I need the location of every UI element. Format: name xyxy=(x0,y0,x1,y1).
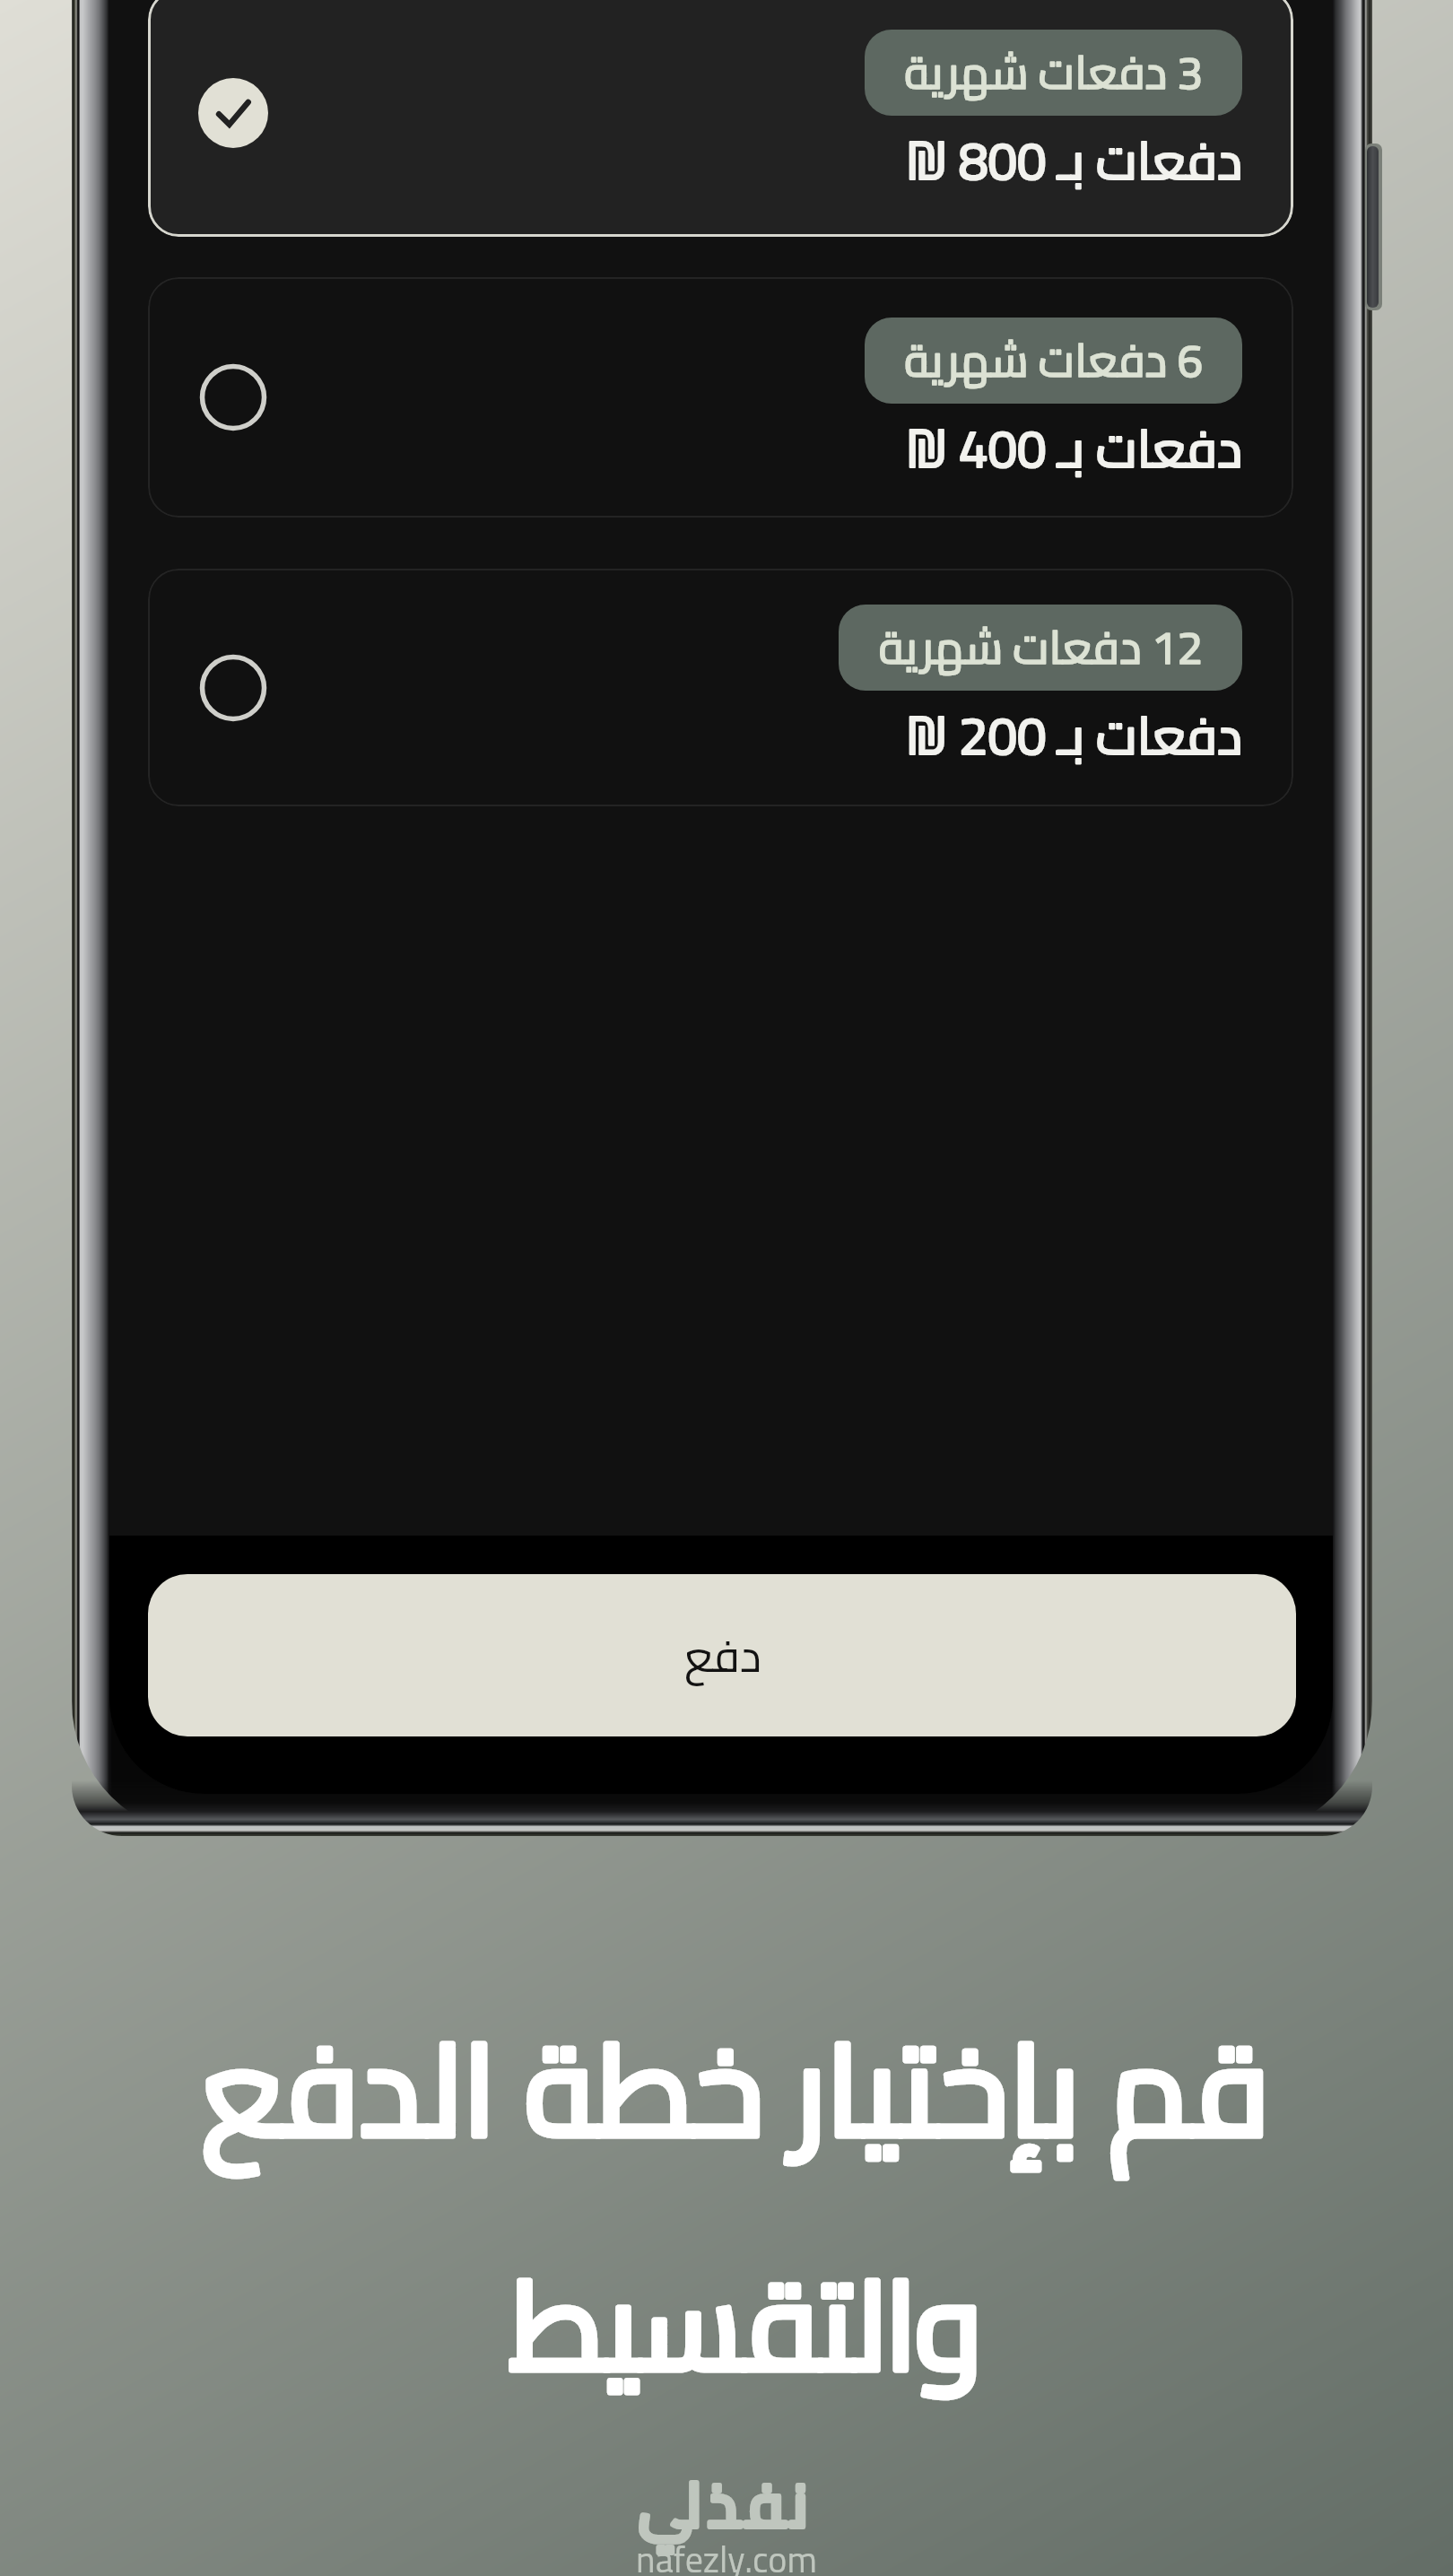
staticText: دفع xyxy=(683,1614,761,1698)
staticText: دفعات بـ 200 ₪ xyxy=(905,686,1242,784)
staticText: 6 دفعات شهرية xyxy=(904,318,1203,404)
staticText: قم بإختيار خطة الدفع xyxy=(9,1970,1453,2208)
staticText: قم بإختيار خطة الدفع xyxy=(9,1970,1453,2208)
staticText: 6 دفعات شهرية xyxy=(904,318,1203,404)
staticText: دفعات بـ 400 ₪ xyxy=(905,399,1242,497)
staticText: نفذلي xyxy=(0,2447,1453,2561)
button[interactable]: دفع xyxy=(148,1574,1296,1736)
staticText: 3 دفعات شهرية xyxy=(904,30,1203,116)
button[interactable]: Select plan xyxy=(148,569,1293,806)
staticText: nafezly.com xyxy=(0,2526,1453,2576)
other: Selected plan xyxy=(197,77,269,149)
button[interactable]: Selected plan xyxy=(148,0,1293,237)
staticText: دفعات بـ 800 ₪ xyxy=(905,111,1242,209)
staticText: دفعات بـ 400 ₪ xyxy=(905,399,1242,497)
staticText: والتقسيط xyxy=(18,2208,1453,2441)
staticText: 12 دفعات شهرية xyxy=(878,605,1203,691)
button[interactable]: Select plan xyxy=(148,277,1293,518)
other: Select plan xyxy=(197,652,269,724)
staticText: والتقسيط xyxy=(18,2208,1453,2441)
staticText: دفعات بـ 200 ₪ xyxy=(905,686,1242,784)
staticText: نفذلي xyxy=(0,2447,1453,2561)
other: Select plan xyxy=(197,361,269,433)
staticText: دفعات بـ 800 ₪ xyxy=(905,111,1242,209)
staticText: 3 دفعات شهرية xyxy=(904,30,1203,116)
staticText: 12 دفعات شهرية xyxy=(878,605,1203,691)
